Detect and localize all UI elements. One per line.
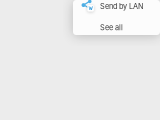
staticText: See all [100, 23, 123, 32]
staticText: Send by LAN [100, 2, 144, 11]
button[interactable]: See all [73, 17, 160, 38]
button[interactable]: Send by LAN [73, 0, 160, 17]
